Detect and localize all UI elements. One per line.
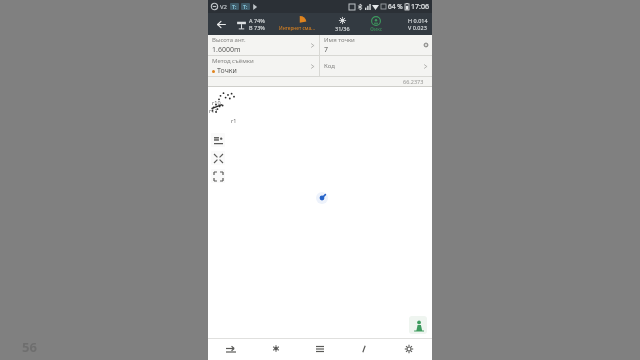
staticText: 64 % — [388, 2, 403, 11]
button[interactable]: Имя точки — [320, 35, 432, 55]
staticText: Фикс — [370, 26, 383, 33]
button[interactable]: A 74% — [236, 13, 265, 35]
button[interactable]: Full extent — [211, 169, 225, 183]
button[interactable]: Point — [255, 338, 297, 360]
staticText: r10 — [212, 99, 221, 106]
staticText: r1 — [231, 117, 237, 124]
staticText: V2 — [220, 3, 228, 11]
button[interactable]: Интернет сма... — [273, 13, 321, 35]
staticText: T: — [232, 3, 237, 10]
staticText: 17:06 — [411, 2, 429, 12]
button[interactable]: 31/36 — [325, 13, 359, 35]
staticText: r11 — [209, 107, 218, 114]
button[interactable]: Layers — [211, 133, 225, 147]
button[interactable]: Survey point — [409, 316, 427, 334]
button[interactable]: Settings — [388, 338, 430, 360]
staticText: Код — [324, 62, 335, 70]
button[interactable]: Import — [210, 338, 252, 360]
staticText: T: — [243, 3, 248, 10]
staticText: 66.2373 — [403, 78, 424, 85]
button[interactable]: Zoom to fit — [211, 151, 225, 165]
button[interactable]: Фикс — [359, 13, 393, 35]
button[interactable]: Метод съёмки — [208, 56, 319, 76]
staticText: 56 — [22, 338, 37, 356]
staticText: Имя точки — [324, 36, 355, 44]
staticText: A 74% — [249, 17, 265, 24]
button[interactable]: Высота ант. — [208, 35, 319, 55]
staticText: Высота ант. — [212, 36, 246, 44]
button[interactable]: List — [299, 338, 341, 360]
staticText: 1.6000m — [212, 45, 241, 55]
button[interactable]: Back — [208, 13, 234, 35]
staticText: 31/36 — [335, 25, 350, 32]
button[interactable]: Код — [320, 56, 432, 76]
staticText: 7 — [324, 45, 329, 55]
staticText: V 0.023 — [408, 24, 427, 31]
button[interactable]: Measure — [343, 338, 385, 360]
staticText: B 73% — [249, 24, 265, 31]
staticText: Точки — [217, 66, 237, 76]
staticText: H 0.014 — [408, 17, 428, 24]
staticText: Метод съёмки — [212, 57, 254, 65]
staticText: Интернет сма... — [279, 25, 315, 32]
